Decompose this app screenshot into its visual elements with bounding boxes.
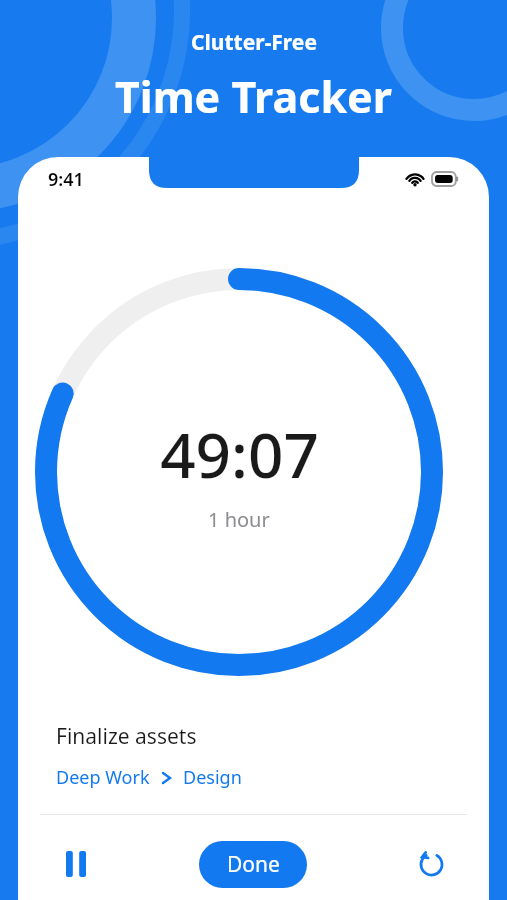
staticText: Done bbox=[227, 850, 280, 879]
staticText: 9:41 bbox=[48, 167, 84, 192]
staticText: Finalize assets bbox=[56, 722, 197, 751]
staticText: 49:07 bbox=[160, 412, 319, 496]
button[interactable]: Reset bbox=[403, 836, 459, 892]
staticText: Time Tracker bbox=[115, 67, 392, 126]
staticText: Design bbox=[183, 765, 242, 790]
button[interactable]: Deep Work bbox=[56, 765, 242, 790]
button[interactable]: Done bbox=[199, 841, 307, 888]
staticText: Clutter-Free bbox=[191, 28, 317, 57]
staticText: 1 hour bbox=[208, 506, 270, 533]
button[interactable]: Pause bbox=[48, 836, 104, 892]
staticText: Deep Work bbox=[56, 765, 150, 790]
